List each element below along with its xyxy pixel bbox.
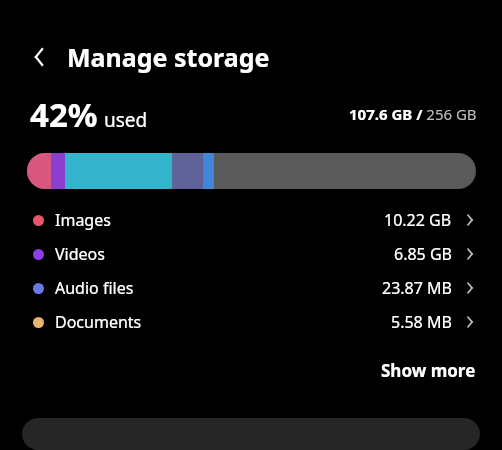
staticText: 5.58 MB bbox=[391, 311, 452, 333]
button[interactable] bbox=[22, 418, 480, 450]
staticText: Manage storage bbox=[67, 40, 270, 74]
staticText: Images bbox=[55, 209, 111, 231]
staticText: 107.6 GB / 256 GB bbox=[349, 104, 477, 124]
button[interactable]: Back bbox=[20, 37, 60, 77]
staticText: 6.85 GB bbox=[394, 243, 452, 265]
staticText: Audio files bbox=[55, 277, 134, 299]
staticText: Documents bbox=[55, 311, 142, 333]
button[interactable]: Show more bbox=[373, 353, 484, 388]
staticText: used bbox=[104, 107, 148, 133]
staticText: 10.22 GB bbox=[384, 209, 452, 231]
button[interactable]: Images bbox=[0, 203, 502, 237]
button[interactable]: Documents bbox=[0, 305, 502, 339]
staticText: Videos bbox=[55, 243, 105, 265]
staticText: 23.87 MB bbox=[382, 277, 452, 299]
button[interactable]: Audio files bbox=[0, 271, 502, 305]
staticText: Show more bbox=[381, 359, 476, 382]
button[interactable]: Videos bbox=[0, 237, 502, 271]
staticText: 42% bbox=[30, 92, 98, 137]
